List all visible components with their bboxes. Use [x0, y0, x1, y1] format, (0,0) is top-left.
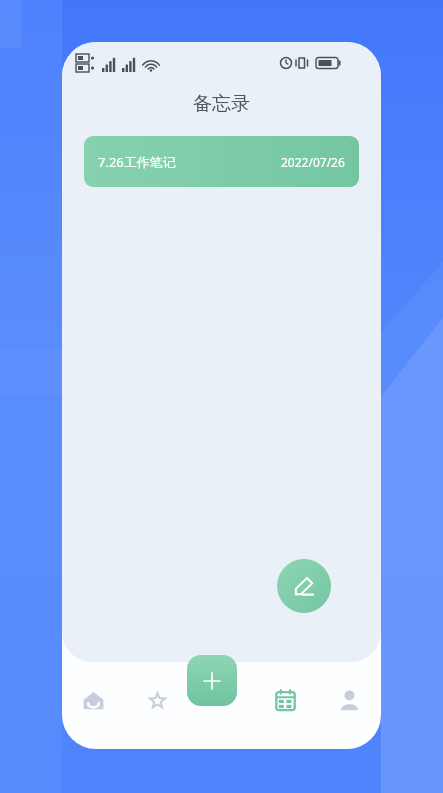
- button[interactable]: Favorites: [125, 662, 189, 749]
- button[interactable]: Home: [62, 662, 125, 749]
- button[interactable]: Calendar: [253, 662, 317, 749]
- button[interactable]: Add: [187, 655, 237, 706]
- button[interactable]: Profile: [317, 662, 381, 749]
- button[interactable]: New note: [277, 559, 331, 613]
- staticText: 备忘录: [193, 92, 250, 116]
- staticText: 7.26工作笔记: [98, 153, 176, 171]
- staticText: 2022/07/26: [281, 154, 345, 170]
- button[interactable]: 7.26工作笔记: [84, 136, 359, 187]
